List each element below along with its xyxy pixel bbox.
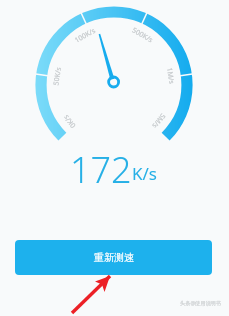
staticText: 172 <box>70 145 132 194</box>
staticText: K/s <box>132 162 157 185</box>
staticText: 重新测速 <box>94 251 134 264</box>
staticText: 头条@使用说明书 <box>180 299 221 306</box>
button[interactable]: 重新测速 <box>15 240 212 275</box>
